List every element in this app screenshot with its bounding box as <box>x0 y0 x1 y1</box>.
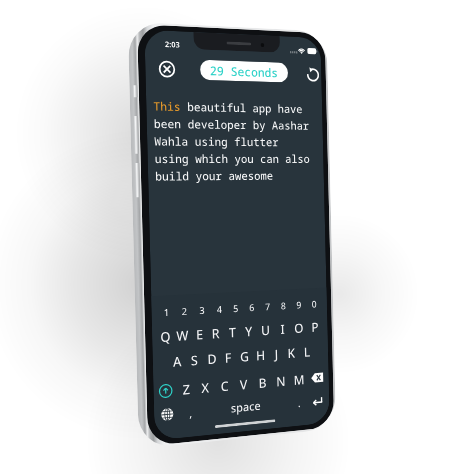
staticText: . <box>298 395 301 410</box>
staticText: 4 <box>217 303 223 316</box>
staticText: 5 <box>233 302 239 315</box>
button[interactable]: X <box>195 377 215 398</box>
button[interactable]: 5 <box>227 299 244 318</box>
staticText: space <box>231 398 261 416</box>
button[interactable]: E <box>191 324 208 344</box>
button[interactable]: O <box>290 318 307 337</box>
button[interactable]: . <box>293 392 304 412</box>
staticText: O <box>294 319 304 337</box>
staticText: 9 <box>296 298 302 311</box>
staticText: W <box>176 326 189 345</box>
staticText: V <box>240 375 248 394</box>
button[interactable]: Change language <box>161 408 173 421</box>
button[interactable]: T <box>224 322 241 342</box>
button[interactable]: space <box>197 393 294 422</box>
button[interactable]: Shift <box>158 383 173 399</box>
staticText: , <box>189 405 193 421</box>
staticText: Q <box>160 327 172 346</box>
staticText: 6 <box>249 301 255 314</box>
button[interactable]: 29 Seconds <box>200 60 288 82</box>
staticText: 7 <box>265 300 271 313</box>
staticText: I <box>280 320 285 338</box>
staticText: X <box>201 378 209 397</box>
button[interactable]: 3 <box>193 300 211 320</box>
button[interactable]: Close <box>158 60 176 78</box>
staticText: N <box>276 372 286 390</box>
button[interactable]: 7 <box>259 297 275 317</box>
staticText: Y <box>245 322 253 340</box>
staticText: 8 <box>281 299 286 312</box>
staticText: R <box>211 324 220 343</box>
staticText: P <box>311 318 319 336</box>
staticText: Z <box>182 380 191 399</box>
staticText: 2:03 <box>165 39 180 50</box>
button[interactable]: 0 <box>306 295 322 314</box>
staticText: D <box>207 349 217 368</box>
button[interactable]: D <box>203 348 220 369</box>
button[interactable]: G <box>236 346 252 366</box>
staticText: M <box>293 370 305 389</box>
staticText: B <box>258 373 267 392</box>
button[interactable]: U <box>257 320 274 339</box>
button[interactable]: S <box>186 349 204 370</box>
button[interactable]: J <box>268 344 284 363</box>
button[interactable]: , <box>185 402 197 423</box>
staticText: T <box>229 323 237 341</box>
button[interactable]: P <box>307 317 323 336</box>
button[interactable]: K <box>284 343 299 362</box>
button[interactable]: N <box>271 371 290 391</box>
button[interactable]: 2 <box>175 301 194 322</box>
staticText: U <box>261 321 270 339</box>
button[interactable]: C <box>215 375 234 396</box>
staticText: 2 <box>181 305 188 318</box>
staticText: J <box>274 345 278 363</box>
button[interactable]: R <box>207 323 224 343</box>
staticText: E <box>196 325 204 344</box>
button[interactable]: M <box>290 369 308 389</box>
staticText: 29 Seconds <box>210 62 279 80</box>
button[interactable]: Q <box>157 326 174 346</box>
button[interactable]: 9 <box>291 295 307 315</box>
staticText: This beautiful app have been developer b… <box>153 98 318 184</box>
button[interactable]: Backspace <box>311 372 324 384</box>
button[interactable]: B <box>253 372 272 393</box>
button[interactable]: W <box>174 325 191 345</box>
button[interactable]: 1 <box>157 302 176 323</box>
button[interactable]: I <box>274 319 291 338</box>
staticText: C <box>220 377 230 395</box>
button[interactable]: 8 <box>275 296 291 316</box>
staticText: S <box>191 351 199 369</box>
button[interactable]: Y <box>240 321 257 341</box>
button[interactable]: 6 <box>243 298 260 318</box>
button[interactable]: F <box>220 347 236 367</box>
button[interactable]: 4 <box>211 299 228 319</box>
button[interactable]: Z <box>176 378 196 399</box>
button[interactable]: Restart <box>304 65 320 82</box>
button[interactable]: L <box>299 341 315 361</box>
button[interactable]: A <box>168 351 186 371</box>
staticText: K <box>287 344 296 362</box>
staticText: 3 <box>199 304 205 317</box>
staticText: A <box>173 352 182 371</box>
staticText: 1 <box>163 306 170 319</box>
staticText: H <box>256 346 266 364</box>
staticText: L <box>304 343 310 361</box>
button[interactable]: H <box>252 345 268 365</box>
staticText: G <box>240 347 250 366</box>
staticText: F <box>225 348 232 367</box>
staticText: 0 <box>312 298 317 311</box>
button[interactable]: V <box>234 374 253 394</box>
button[interactable]: Enter <box>311 395 323 407</box>
